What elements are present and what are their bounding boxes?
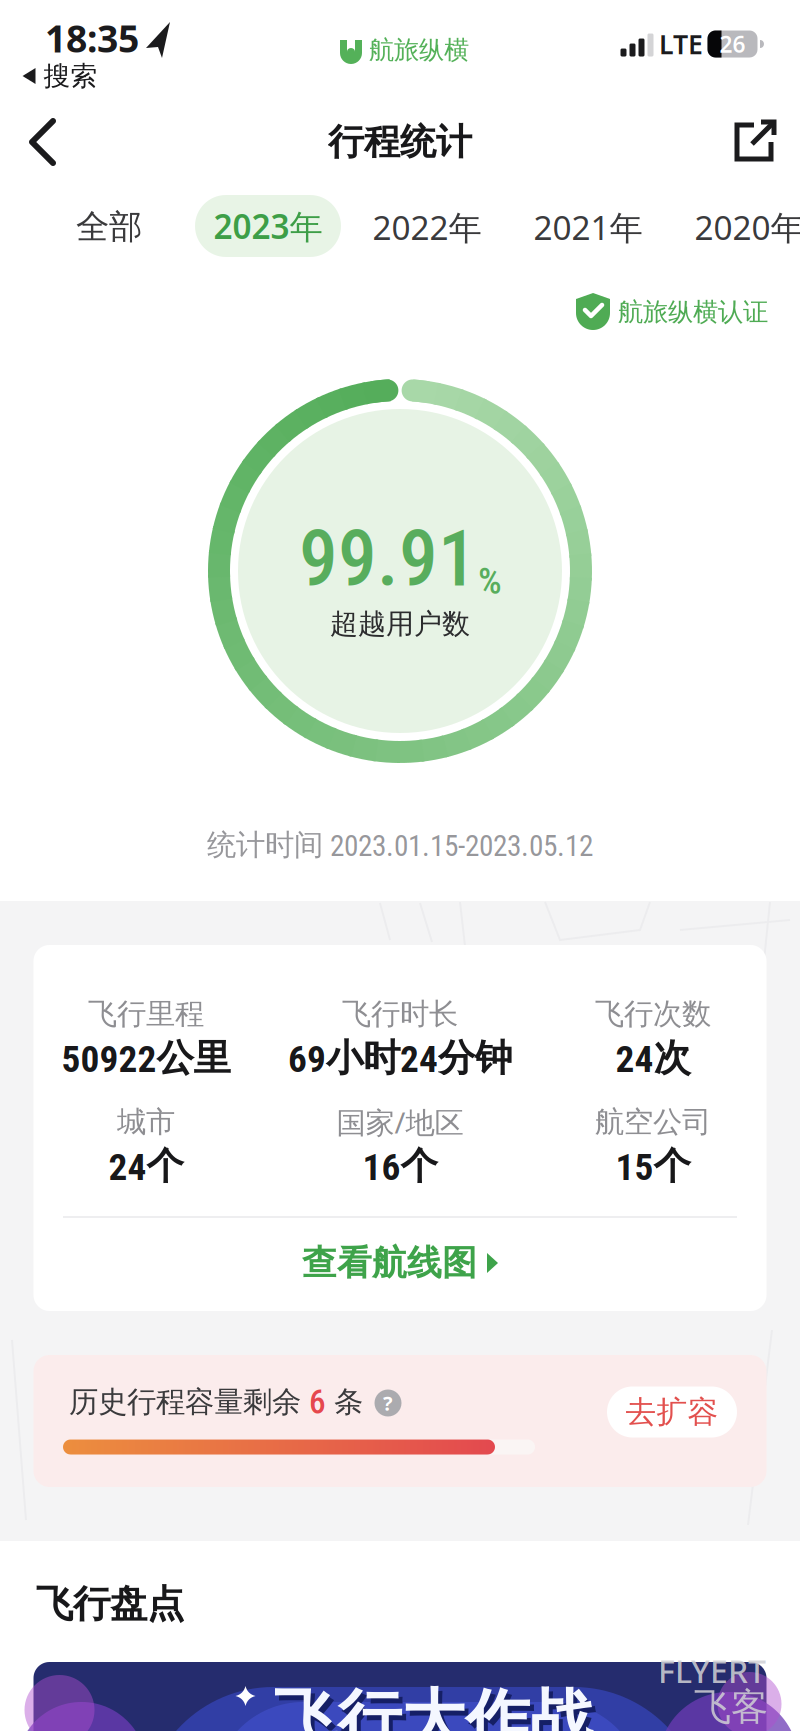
button[interactable]: 查看航线图: [302, 1242, 498, 1284]
staticText: 国家/地区: [336, 1102, 463, 1141]
staticText: FLYERT: [658, 1650, 766, 1692]
staticText: 搜索: [43, 60, 97, 92]
button[interactable]: 2023年: [195, 195, 341, 257]
staticText: 城市: [117, 1104, 175, 1140]
staticText: 去扩容: [625, 1393, 718, 1431]
staticText: 24次: [615, 1034, 690, 1081]
staticText: 15个: [615, 1142, 690, 1189]
staticText: 26: [719, 29, 745, 59]
button[interactable]: 航旅纵横: [339, 34, 469, 65]
staticText: LTE: [659, 26, 703, 62]
staticText: 行程统计: [328, 120, 472, 164]
staticText: 超越用户数: [330, 607, 470, 641]
staticText: 99.91: [299, 514, 477, 604]
staticText: 69小时24分钟: [288, 1034, 512, 1081]
staticText: 24个: [108, 1142, 183, 1189]
staticText: 飞行次数: [595, 996, 711, 1032]
staticText: 飞客: [694, 1684, 768, 1730]
button[interactable]: 帮助: [374, 1389, 401, 1416]
staticText: 50922公里: [61, 1034, 230, 1081]
staticText: 航旅纵横认证: [618, 296, 768, 327]
button[interactable]: 分享: [729, 117, 777, 165]
staticText: 飞行时长: [342, 996, 458, 1032]
staticText: 查看航线图: [302, 1242, 477, 1284]
staticText: 统计时间 2023.01.15-2023.05.12: [207, 826, 593, 863]
button[interactable]: 全部: [49, 196, 169, 258]
staticText: ?: [383, 1390, 393, 1416]
button[interactable]: 2022年: [352, 196, 502, 258]
staticText: 2021年: [533, 205, 642, 249]
staticText: 历史行程容量剩余: [69, 1384, 301, 1420]
staticText: 航空公司: [595, 1104, 711, 1140]
button[interactable]: 去扩容: [607, 1386, 737, 1437]
staticText: 飞行大作战: [277, 1686, 597, 1731]
button[interactable]: 航旅纵横认证: [576, 293, 768, 331]
staticText: %: [478, 559, 502, 603]
staticText: 18:35: [45, 13, 139, 63]
staticText: 6: [301, 1382, 334, 1422]
staticText: 16个: [362, 1142, 437, 1189]
staticText: 飞行里程: [88, 996, 204, 1032]
staticText: 全部: [76, 206, 142, 247]
button[interactable]: 返回: [21, 117, 67, 167]
button[interactable]: 2021年: [513, 196, 663, 258]
staticText: 条: [334, 1384, 363, 1420]
staticText: 航旅纵横: [369, 34, 469, 65]
button[interactable]: 2020年: [674, 196, 800, 258]
button[interactable]: 返回搜索: [22, 60, 97, 92]
staticText: 2022年: [372, 205, 481, 249]
staticText: 2020年: [694, 205, 800, 249]
button[interactable]: 飞行大作战活动: [33, 1662, 766, 1731]
staticText: 2023年: [213, 204, 322, 248]
staticText: 飞行盘点: [36, 1581, 184, 1627]
staticText: 飞行大作战: [273, 1681, 593, 1731]
